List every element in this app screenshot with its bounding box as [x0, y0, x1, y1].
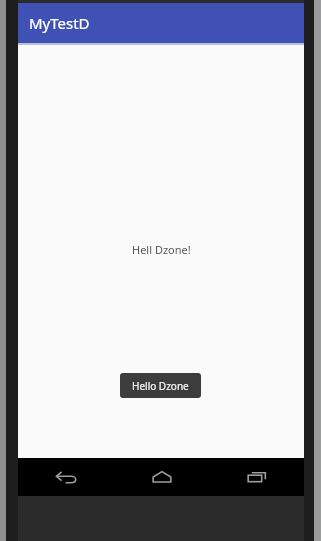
button[interactable]: Back — [18, 458, 114, 496]
button[interactable]: Recent apps — [209, 458, 304, 496]
button[interactable]: MyTestD — [18, 3, 304, 43]
staticText: Hell Dzone! — [132, 242, 191, 257]
staticText: MyTestD — [29, 13, 90, 33]
button[interactable]: Home — [114, 458, 209, 496]
staticText: Hello Dzone — [132, 379, 189, 393]
